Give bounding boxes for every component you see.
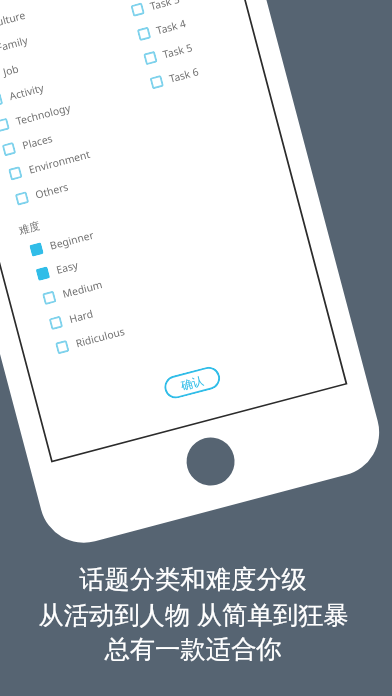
button[interactable]: Family: [0, 28, 31, 64]
button[interactable]: Activity: [0, 75, 47, 112]
staticText: 从活动到人物 从简单到狂暴: [38, 597, 349, 632]
staticText: Family: [0, 33, 29, 55]
staticText: 确认: [179, 373, 205, 393]
button[interactable]: Task 6: [148, 60, 201, 94]
staticText: Places: [21, 131, 54, 152]
button[interactable]: Task 3: [129, 0, 182, 22]
staticText: Others: [34, 179, 70, 202]
staticText: Easy: [55, 258, 79, 277]
staticText: 总有一款适合你: [104, 634, 282, 666]
staticText: 话题分类和难度分级: [79, 564, 307, 596]
staticText: Hard: [68, 306, 95, 326]
button[interactable]: Medium: [40, 272, 105, 310]
staticText: Ridiculous: [74, 324, 126, 350]
button[interactable]: Technology: [0, 95, 73, 137]
button[interactable]: Culture: [0, 3, 28, 39]
staticText: Activity: [8, 80, 46, 103]
staticText: Task 3: [148, 0, 181, 13]
button[interactable]: Environment: [6, 142, 93, 185]
button[interactable]: Others: [13, 175, 71, 211]
button[interactable]: Task 5: [141, 35, 195, 70]
button[interactable]: 确认: [162, 364, 223, 401]
staticText: Task 4: [155, 16, 187, 37]
button[interactable]: Easy: [34, 253, 81, 286]
staticText: Technology: [14, 100, 72, 128]
staticText: Culture: [0, 8, 27, 30]
staticText: Environment: [27, 147, 92, 176]
button[interactable]: Beginner: [28, 223, 96, 262]
staticText: 难度: [17, 219, 42, 237]
button[interactable]: Home: [181, 433, 240, 491]
button[interactable]: Places: [0, 126, 55, 161]
button[interactable]: Job: [0, 56, 21, 88]
staticText: Job: [1, 61, 20, 79]
staticText: Medium: [61, 277, 104, 301]
button[interactable]: Task 4: [135, 11, 188, 46]
button[interactable]: Hard: [47, 301, 96, 335]
staticText: Task 6: [168, 64, 200, 86]
button[interactable]: Ridiculous: [53, 319, 127, 359]
staticText: Beginner: [48, 228, 95, 253]
staticText: Task 5: [161, 40, 194, 61]
